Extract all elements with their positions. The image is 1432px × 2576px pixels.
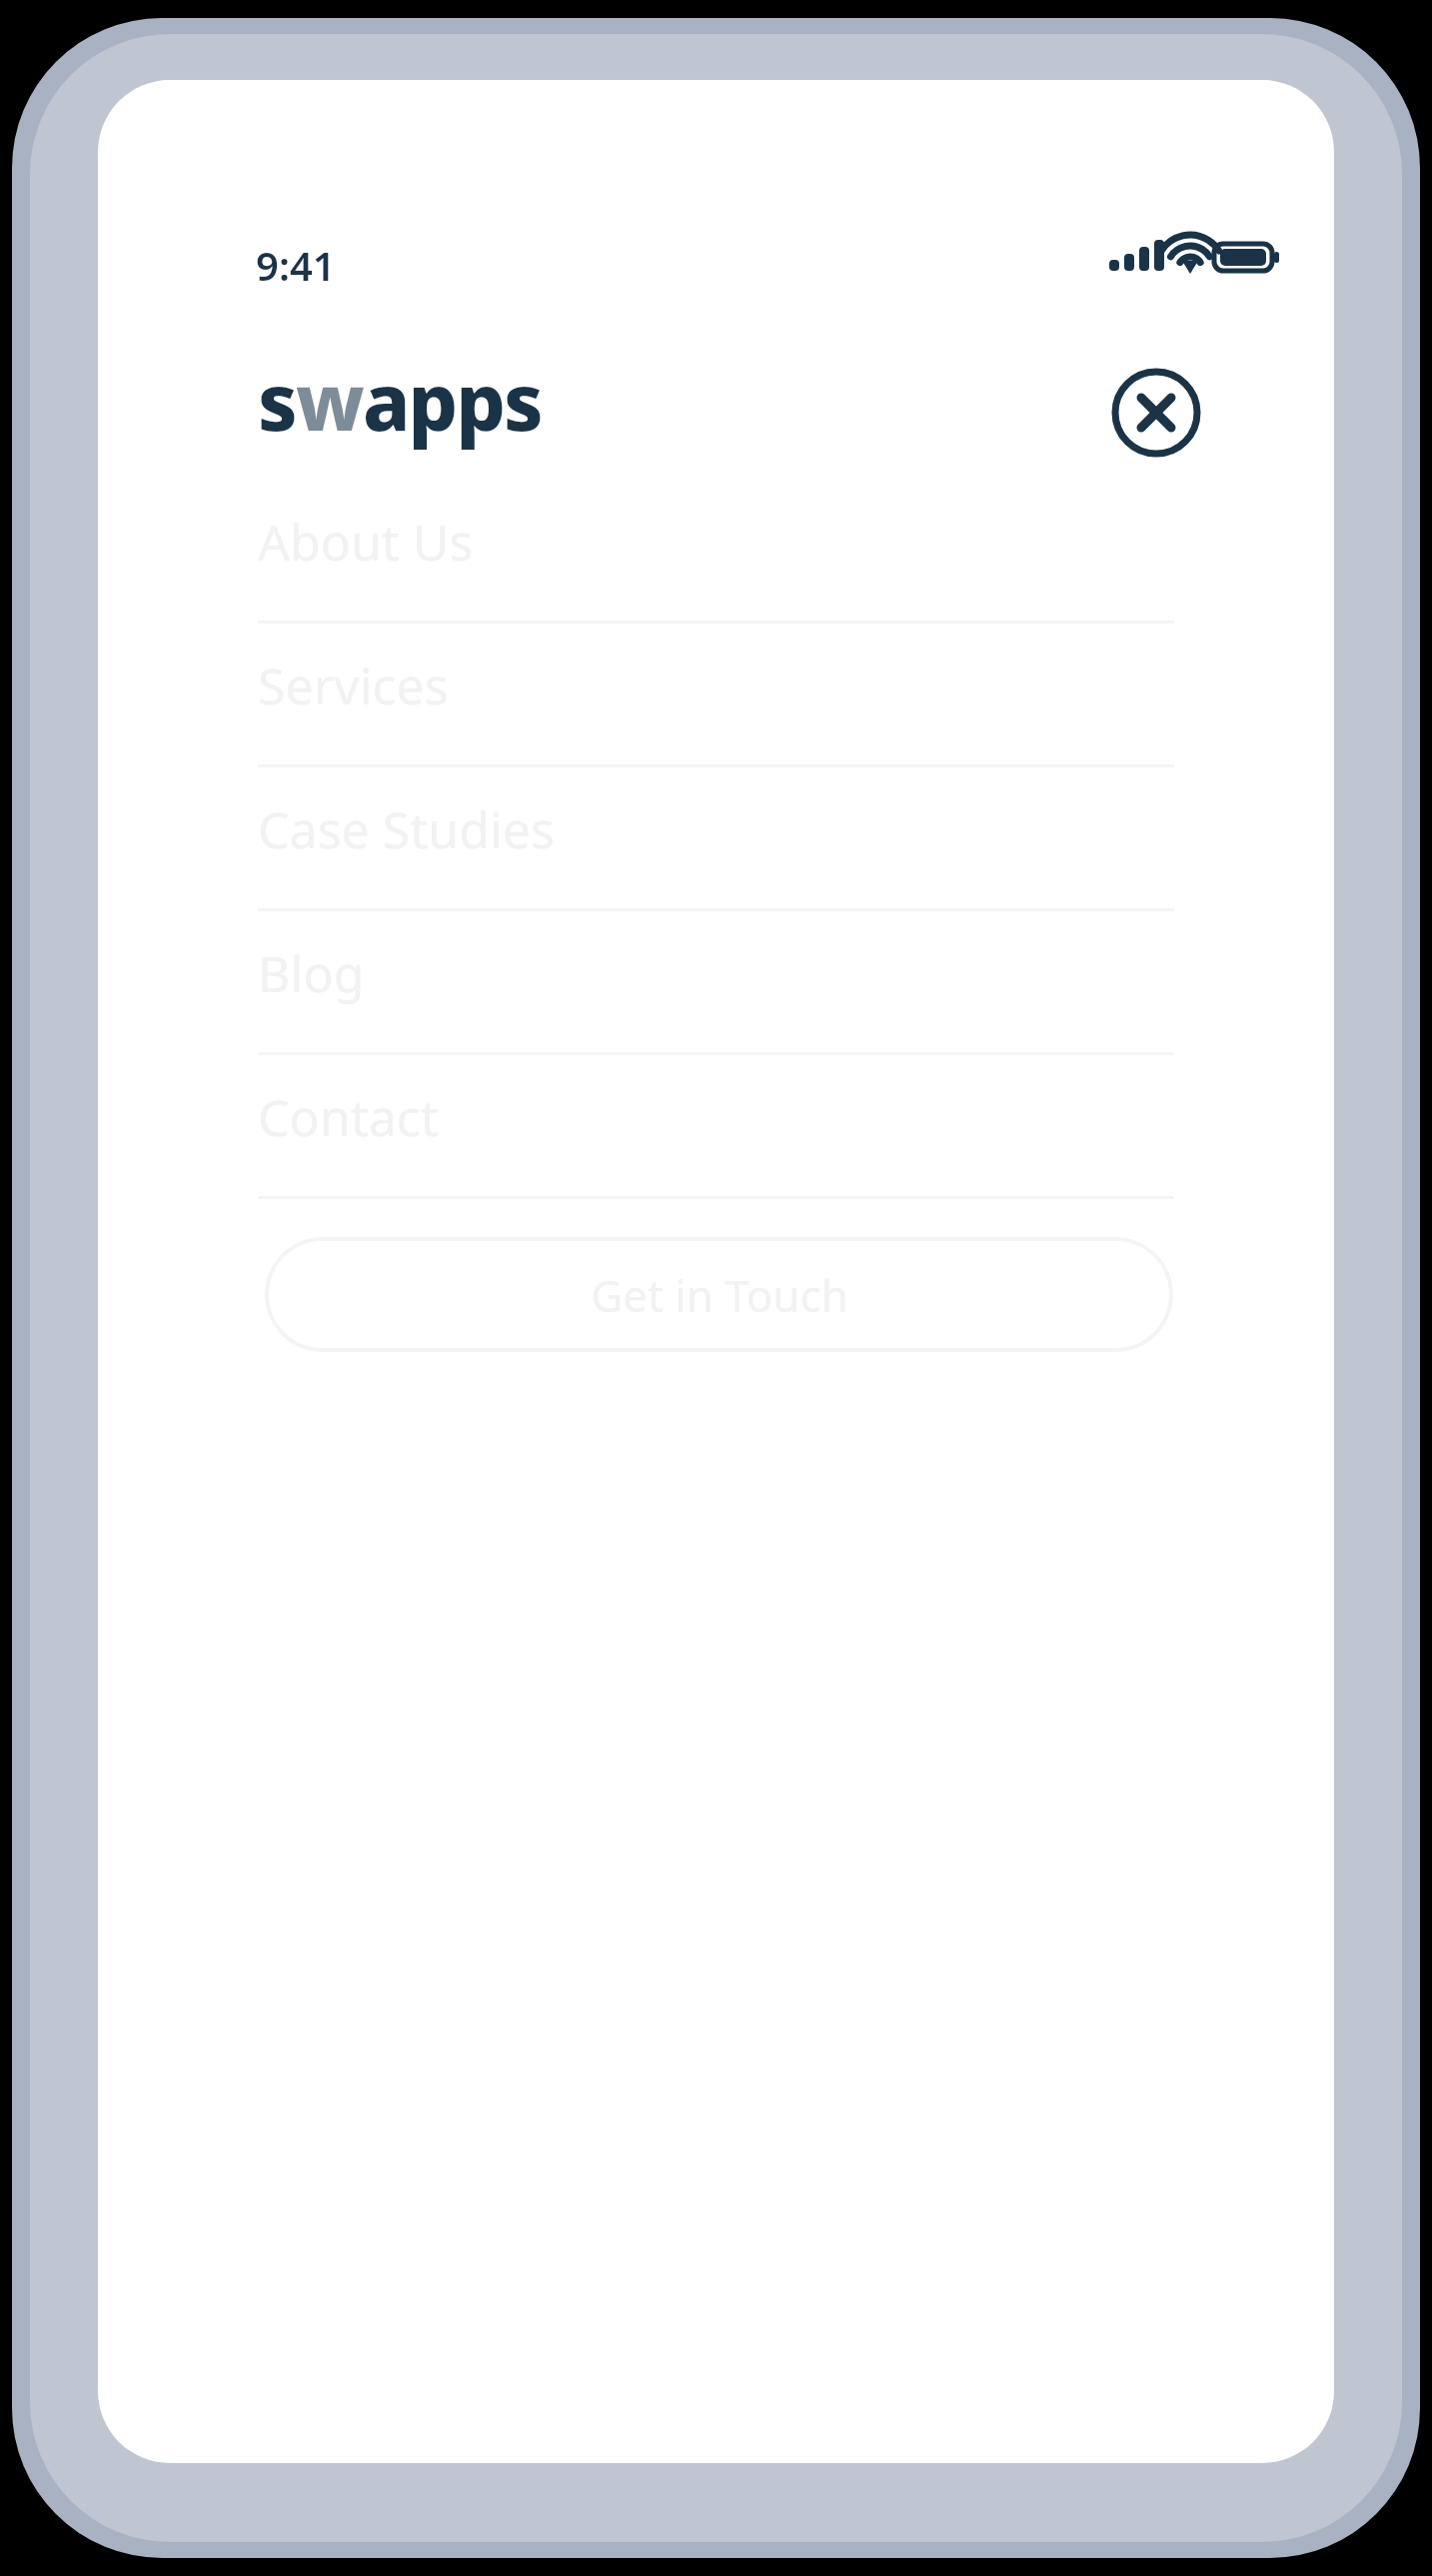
staticText: w (296, 348, 363, 454)
staticText: Case Studies (258, 795, 555, 863)
button[interactable]: s (258, 348, 542, 454)
staticText: Blog (258, 939, 365, 1007)
button[interactable]: Get in Touch (265, 1237, 1173, 1352)
staticText: Services (258, 651, 449, 719)
staticText: Contact (258, 1083, 439, 1151)
staticText: apps (363, 348, 542, 454)
staticText: About Us (258, 508, 474, 576)
staticText: Get in Touch (591, 1265, 848, 1325)
staticText: 9:41 (256, 238, 336, 292)
button[interactable]: Close menu (1109, 366, 1203, 460)
staticText: s (258, 348, 296, 454)
